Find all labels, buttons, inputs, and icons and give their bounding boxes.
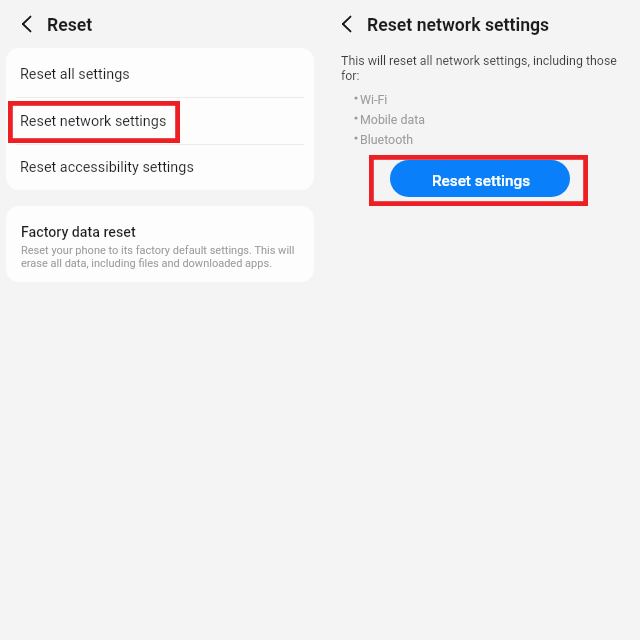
staticText: Mobile data [360, 112, 426, 127]
button[interactable]: Reset all settings [6, 48, 314, 97]
staticText: Wi-Fi [360, 92, 388, 107]
staticText: Reset settings [432, 172, 531, 190]
staticText: Reset all settings [20, 66, 130, 83]
staticText: This will reset all network settings, in… [341, 53, 626, 83]
button[interactable]: Factory data reset [6, 206, 314, 282]
button[interactable]: Reset accessibility settings [6, 145, 314, 190]
staticText: Reset your phone to its factory default … [21, 244, 296, 270]
button[interactable]: Back [10, 7, 44, 41]
staticText: Reset network settings [20, 113, 167, 130]
staticText: Factory data reset [21, 224, 136, 241]
button[interactable]: Reset network settings [6, 98, 314, 144]
button[interactable]: Back [330, 7, 364, 41]
staticText: Bluetooth [360, 132, 414, 147]
staticText: Reset [47, 15, 93, 36]
staticText: Reset network settings [367, 15, 550, 36]
staticText: Reset accessibility settings [20, 159, 194, 176]
button[interactable]: Reset settings [390, 160, 570, 197]
